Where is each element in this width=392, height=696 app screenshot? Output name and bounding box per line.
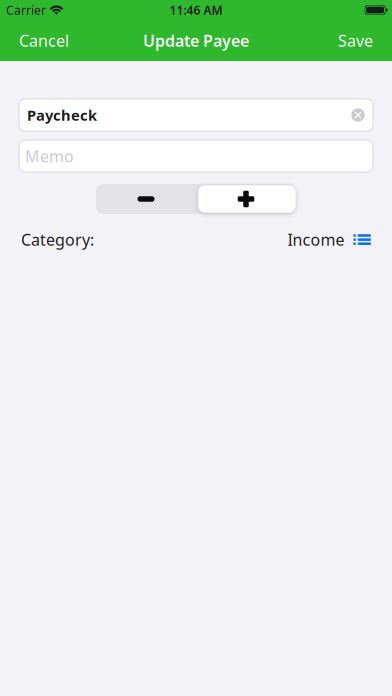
staticText: Category: [21, 229, 94, 250]
button[interactable]: Cancel [17, 22, 71, 59]
staticText: Update Payee [143, 30, 249, 51]
button[interactable]: Expense [96, 184, 196, 214]
staticText: 11:46 AM [169, 2, 222, 18]
button[interactable]: Clear text [347, 104, 369, 126]
staticText: Carrier [6, 2, 46, 18]
staticText: Income [287, 229, 344, 250]
button[interactable]: Income [196, 184, 296, 214]
staticText: Paycheck [27, 105, 97, 125]
staticText: Save [338, 30, 373, 51]
staticText: Cancel [19, 30, 69, 51]
staticText: Memo [25, 145, 74, 167]
button[interactable]: Income [287, 229, 371, 250]
button[interactable]: Save [336, 22, 375, 59]
